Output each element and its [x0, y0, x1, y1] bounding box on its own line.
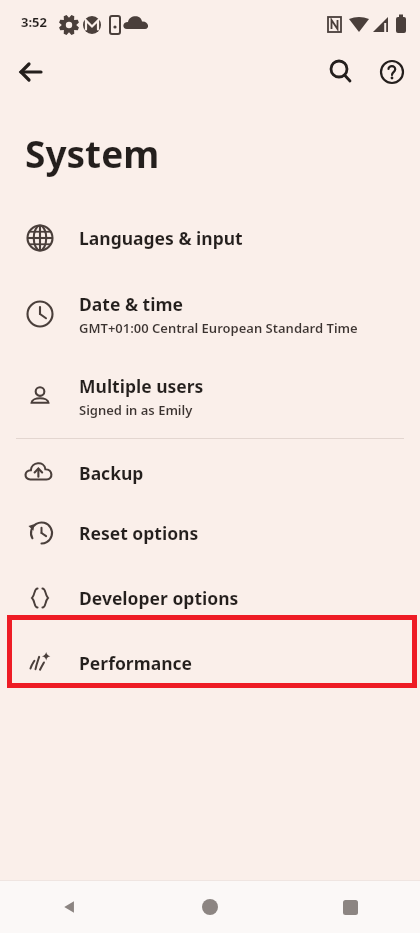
button[interactable]: Languages & input: [0, 208, 420, 268]
button[interactable]: Back: [0, 881, 140, 933]
button[interactable]: Developer options: [0, 565, 420, 631]
staticText: Date & time: [79, 292, 183, 316]
button[interactable]: Date & time: [0, 268, 420, 360]
button[interactable]: Back: [8, 49, 54, 95]
staticText: Reset options: [79, 521, 199, 545]
button[interactable]: Performance: [0, 631, 420, 695]
staticText: System: [25, 128, 160, 178]
staticText: 3:52: [21, 13, 47, 31]
staticText: Signed in as Emily: [79, 401, 193, 419]
button[interactable]: Search: [318, 49, 364, 95]
button[interactable]: Help: [369, 49, 415, 95]
button[interactable]: Home: [140, 881, 280, 933]
staticText: Multiple users: [79, 374, 204, 398]
staticText: GMT+01:00 Central European Standard Time: [79, 319, 358, 337]
button[interactable]: Recent apps: [280, 881, 420, 933]
staticText: Backup: [79, 461, 144, 485]
staticText: Developer options: [79, 586, 239, 610]
staticText: Performance: [79, 651, 193, 675]
staticText: Languages & input: [79, 226, 243, 250]
button[interactable]: Reset options: [0, 501, 420, 565]
button[interactable]: Multiple users: [0, 360, 420, 432]
button[interactable]: Backup: [0, 445, 420, 501]
